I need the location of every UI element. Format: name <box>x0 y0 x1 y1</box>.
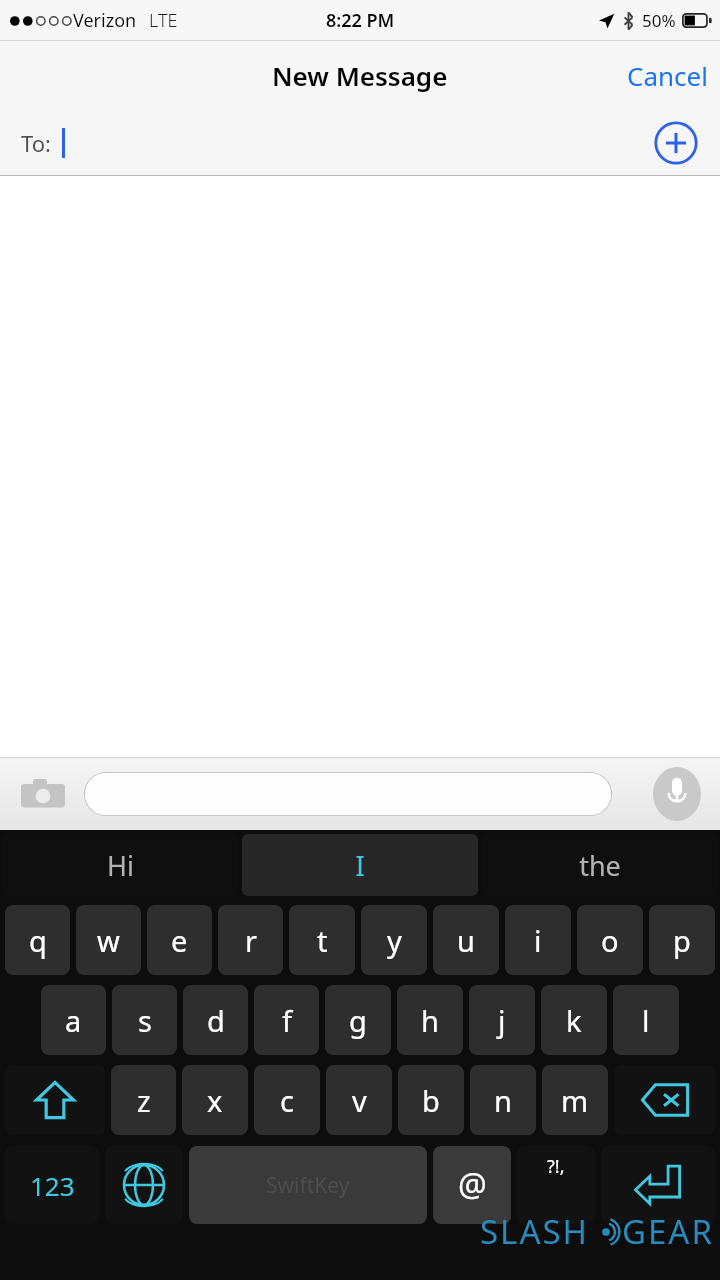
staticText: o <box>601 921 619 960</box>
button[interactable]: Camera <box>18 773 68 815</box>
button[interactable]: Backspace <box>614 1065 715 1135</box>
staticText: e <box>171 921 188 960</box>
button[interactable]: Cancel <box>615 44 720 107</box>
staticText: d <box>207 1001 225 1040</box>
staticText: SLASH <box>480 1209 590 1254</box>
staticText: a <box>65 1001 82 1040</box>
staticText: s <box>138 1001 152 1040</box>
button[interactable]: Add contact <box>654 121 698 165</box>
staticText: g <box>349 1001 367 1040</box>
staticText: m <box>561 1081 589 1120</box>
staticText: l <box>642 1001 650 1040</box>
button[interactable]: SwiftKey <box>189 1146 427 1224</box>
button[interactable]: b <box>398 1065 464 1135</box>
button[interactable]: z <box>111 1065 176 1135</box>
staticText: w <box>97 921 120 960</box>
staticText: i <box>534 921 542 960</box>
button[interactable]: d <box>183 985 248 1055</box>
staticText: t <box>317 921 328 960</box>
button[interactable]: q <box>5 905 70 975</box>
button[interactable]: m <box>542 1065 608 1135</box>
staticText: 50% <box>642 9 676 32</box>
staticText: x <box>207 1081 223 1120</box>
button[interactable]: Voice message <box>653 767 701 821</box>
staticText: r <box>245 921 257 960</box>
button[interactable]: p <box>649 905 715 975</box>
staticText: 123 <box>30 1168 75 1203</box>
button[interactable]: w <box>76 905 141 975</box>
staticText: GEAR <box>622 1209 714 1254</box>
button[interactable]: u <box>433 905 499 975</box>
staticText: I <box>355 847 365 884</box>
button[interactable]: k <box>541 985 607 1055</box>
staticText: v <box>352 1081 367 1120</box>
staticText: y <box>387 921 402 960</box>
button[interactable]: r <box>218 905 283 975</box>
button[interactable]: i <box>505 905 571 975</box>
staticText: To: <box>21 128 51 158</box>
button[interactable]: ?!, <box>517 1146 595 1224</box>
staticText: c <box>280 1081 294 1120</box>
button[interactable]: x <box>182 1065 248 1135</box>
button[interactable]: 123 <box>5 1146 99 1224</box>
button[interactable]: y <box>361 905 427 975</box>
button[interactable]: l <box>613 985 679 1055</box>
staticText: the <box>579 847 621 884</box>
button[interactable]: o <box>577 905 643 975</box>
staticText: f <box>282 1001 292 1040</box>
staticText: SwiftKey <box>266 1171 350 1200</box>
staticText: z <box>137 1081 151 1120</box>
staticText: ?!, <box>547 1154 565 1179</box>
staticText: Verizon <box>73 8 137 33</box>
staticText: q <box>29 921 47 960</box>
staticText: u <box>457 921 475 960</box>
staticText: j <box>498 1001 506 1040</box>
staticText: k <box>566 1001 582 1040</box>
button[interactable]: h <box>397 985 463 1055</box>
button[interactable]: s <box>112 985 177 1055</box>
button[interactable]: the <box>482 834 718 896</box>
staticText: 8:22 PM <box>326 8 395 33</box>
button[interactable]: Enter <box>601 1146 715 1224</box>
button[interactable]: @ <box>433 1146 511 1224</box>
staticText: Hi <box>107 847 134 884</box>
button[interactable]: n <box>470 1065 536 1135</box>
staticText: LTE <box>149 8 178 33</box>
button[interactable]: Change language <box>105 1146 183 1224</box>
button[interactable]: t <box>289 905 355 975</box>
staticText: b <box>422 1081 440 1120</box>
staticText: New Message <box>272 58 448 93</box>
button[interactable]: v <box>326 1065 392 1135</box>
button[interactable]: I <box>242 834 478 896</box>
button[interactable]: Shift <box>5 1065 105 1135</box>
button[interactable]: e <box>147 905 212 975</box>
button[interactable]: f <box>254 985 319 1055</box>
button[interactable]: Hi <box>2 834 238 896</box>
staticText: Cancel <box>627 58 708 93</box>
staticText: h <box>421 1001 439 1040</box>
staticText: n <box>494 1081 512 1120</box>
staticText: @ <box>458 1163 487 1207</box>
button[interactable] <box>84 772 612 816</box>
button[interactable]: j <box>469 985 535 1055</box>
button[interactable]: g <box>325 985 391 1055</box>
button[interactable]: c <box>254 1065 320 1135</box>
staticText: p <box>673 921 691 960</box>
button[interactable]: a <box>41 985 106 1055</box>
